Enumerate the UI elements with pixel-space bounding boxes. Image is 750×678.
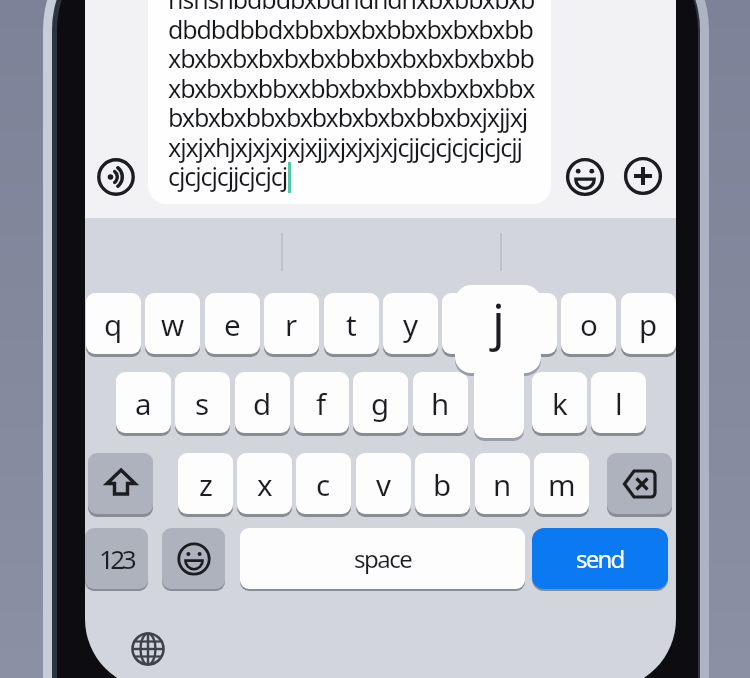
button[interactable]: w — [145, 293, 200, 354]
button[interactable]: l — [591, 372, 646, 433]
button[interactable]: f — [294, 372, 349, 433]
staticText: w — [161, 304, 185, 344]
staticText: n — [493, 464, 512, 504]
staticText: xjxjxhjxjxjxjxjxjjxjxjxjxjcjjcjcjcjcjcjc… — [168, 130, 522, 164]
button[interactable]: c — [296, 453, 351, 514]
button[interactable] — [148, 0, 551, 204]
button[interactable]: b — [415, 453, 470, 514]
button[interactable]: space — [240, 528, 525, 589]
staticText: xbxbxbxbbxxbbxbxbxbbxbxbxbbx — [168, 71, 535, 105]
button[interactable]: y — [383, 293, 438, 354]
staticText: dbdbdbbdxbbxbxbxbbxbxbxbxbb — [168, 12, 533, 46]
button[interactable]: d — [235, 372, 290, 433]
button[interactable] — [624, 157, 662, 195]
staticText: z — [199, 464, 213, 504]
button[interactable] — [131, 632, 165, 666]
button[interactable]: z — [178, 453, 233, 514]
button[interactable] — [97, 158, 135, 196]
staticText: o — [580, 304, 598, 344]
button[interactable]: m — [534, 453, 589, 514]
staticText: space — [354, 542, 412, 575]
button[interactable]: h — [413, 372, 468, 433]
staticText: p — [639, 304, 658, 344]
staticText: h — [431, 383, 450, 423]
button[interactable] — [162, 528, 225, 589]
staticText: cjcjcjcjjcjcjcj — [168, 159, 288, 193]
staticText: xbxbxbxbxbxbxbbxbxbxbxbxbxbb — [168, 41, 534, 75]
button[interactable]: 123 — [85, 528, 148, 589]
staticText: j — [492, 287, 505, 355]
button[interactable]: a — [116, 372, 171, 433]
button[interactable]: q — [86, 293, 141, 354]
button[interactable]: u — [442, 293, 497, 354]
staticText: d — [253, 383, 272, 423]
staticText: k — [552, 383, 568, 423]
staticText: q — [104, 304, 123, 344]
button[interactable] — [566, 158, 604, 196]
staticText: g — [371, 383, 390, 423]
staticText: f — [316, 383, 327, 423]
button[interactable]: j — [455, 285, 541, 373]
staticText: bxbxbxbbxbxbxbxbxbxbbxbxjxjjxj — [168, 100, 528, 134]
button[interactable]: s — [175, 372, 230, 433]
button[interactable]: v — [356, 453, 411, 514]
button[interactable]: o — [561, 293, 616, 354]
staticText: s — [195, 383, 210, 423]
staticText: c — [316, 464, 331, 504]
button[interactable]: t — [324, 293, 379, 354]
button[interactable]: x — [237, 453, 292, 514]
staticText: hshshbdbdbxbdhdhdhxbxbbxbxb — [168, 0, 535, 16]
button[interactable] — [88, 453, 153, 514]
button[interactable]: p — [621, 293, 676, 354]
button[interactable]: n — [475, 453, 530, 514]
staticText: m — [548, 464, 576, 504]
staticText: r — [285, 304, 298, 344]
staticText: 123 — [99, 541, 134, 576]
button[interactable]: g — [353, 372, 408, 433]
button[interactable]: i — [502, 293, 557, 354]
button[interactable]: r — [264, 293, 319, 354]
button[interactable]: e — [205, 293, 260, 354]
staticText: t — [346, 304, 357, 344]
button[interactable] — [607, 453, 672, 514]
button[interactable]: send — [532, 528, 668, 589]
staticText: send — [576, 542, 624, 575]
staticText: b — [433, 464, 452, 504]
staticText: l — [615, 383, 623, 423]
button[interactable]: k — [532, 372, 587, 433]
staticText: e — [224, 304, 241, 344]
staticText: y — [403, 304, 419, 344]
staticText: v — [376, 464, 391, 504]
staticText: a — [135, 383, 152, 423]
staticText: x — [257, 464, 273, 504]
